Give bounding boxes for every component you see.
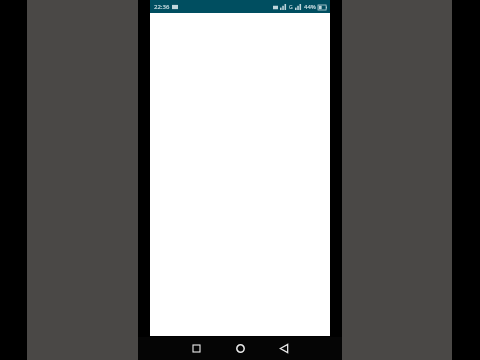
button[interactable]: Home: [218, 337, 262, 360]
button[interactable]: Back: [262, 337, 306, 360]
button[interactable]: Recent apps: [174, 337, 218, 360]
staticText: G: [289, 4, 293, 11]
staticText: 44%: [304, 3, 316, 11]
staticText: 22:36: [154, 3, 170, 11]
